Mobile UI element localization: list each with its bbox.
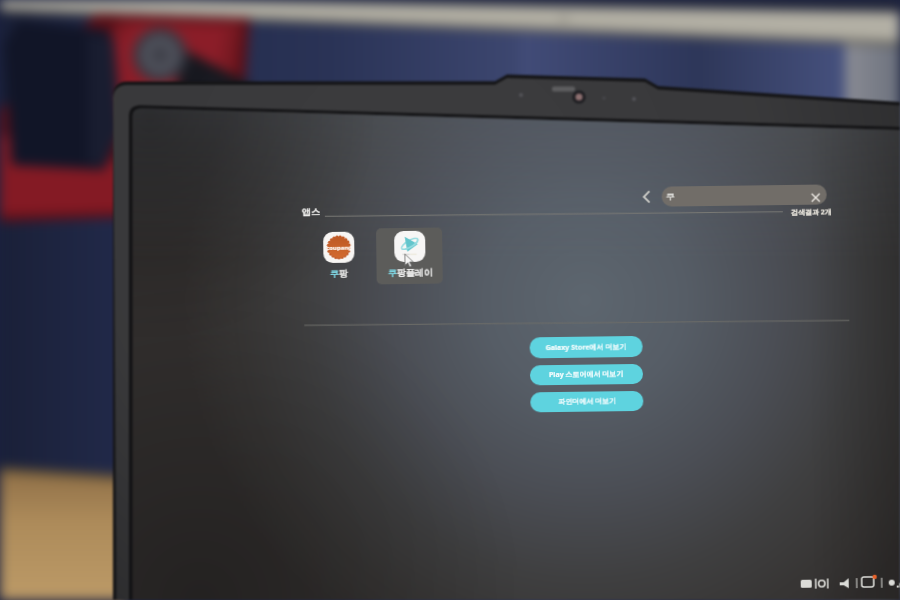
button[interactable]: 쿠팡플레이: [376, 227, 443, 284]
staticText: Play 스토어에서 더보기: [549, 369, 624, 380]
staticText: Galaxy Store에서 더보기: [546, 342, 627, 353]
staticText: 쿠: [666, 190, 675, 202]
button[interactable]: Back: [635, 186, 658, 208]
staticText: 쿠팡: [330, 268, 348, 279]
button[interactable]: Play 스토어에서 더보기: [530, 364, 643, 385]
staticText: 파인더에서 더보기: [558, 396, 616, 407]
staticText: 검색결과 2개: [791, 207, 832, 218]
button[interactable]: coupang: [305, 228, 372, 285]
staticText: 앱스: [302, 206, 320, 217]
button[interactable]: Galaxy Store에서 더보기: [529, 336, 643, 358]
staticText: 쿠팡플레이: [388, 267, 433, 278]
button[interactable]: 파인더에서 더보기: [530, 391, 643, 412]
button[interactable]: 쿠: [661, 184, 827, 207]
button[interactable]: Clear search: [809, 190, 822, 204]
staticText: coupang: [326, 244, 352, 252]
